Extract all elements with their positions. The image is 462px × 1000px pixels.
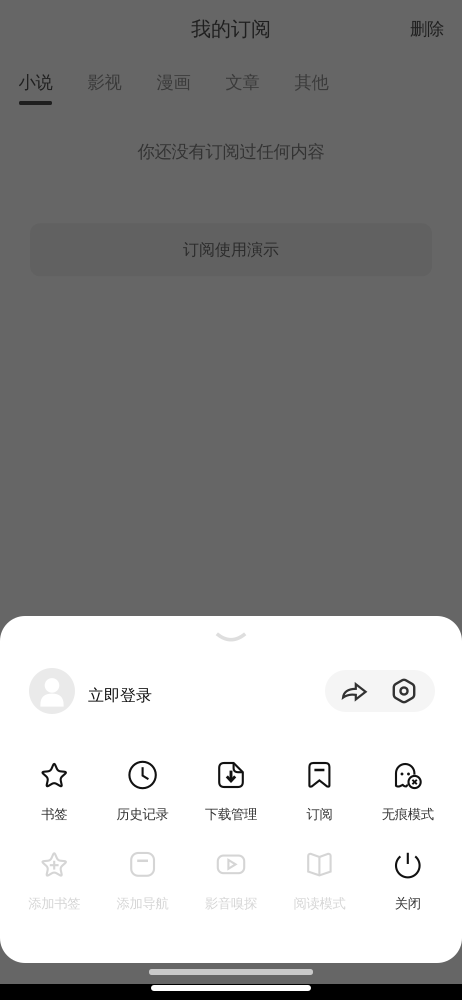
button[interactable]: 影音嗅探	[187, 848, 275, 912]
button[interactable]: 订阅使用演示	[30, 223, 432, 276]
button[interactable]: 历史记录	[98, 759, 187, 822]
staticText: 你还没有订阅过任何内容	[137, 141, 324, 162]
staticText: 删除	[410, 18, 444, 40]
button[interactable]: 添加书签	[10, 848, 98, 912]
button[interactable]: 漫画	[139, 58, 208, 112]
staticText: 文章	[225, 72, 259, 93]
staticText: 影音嗅探	[205, 895, 257, 912]
button[interactable]: 删除	[392, 6, 462, 52]
button[interactable]: 无痕模式	[364, 759, 452, 822]
staticText: 订阅使用演示	[183, 240, 279, 260]
staticText: 书签	[41, 806, 67, 822]
staticText: 无痕模式	[382, 806, 434, 822]
staticText: 我的订阅	[191, 17, 271, 41]
button[interactable]: 设置	[383, 670, 435, 712]
button[interactable]: 关闭	[364, 848, 452, 912]
button[interactable]: 订阅	[275, 759, 364, 822]
staticText: 小说	[18, 72, 52, 93]
staticText: 立即登录	[88, 686, 152, 705]
button[interactable]: 阅读模式	[275, 848, 364, 912]
staticText: 历史记录	[117, 806, 169, 822]
button[interactable]: 书签	[10, 759, 98, 822]
staticText: 下载管理	[205, 806, 257, 822]
staticText: 漫画	[156, 72, 190, 93]
staticText: 其他	[294, 72, 328, 93]
button[interactable]: 添加导航	[98, 848, 187, 912]
button[interactable]: 其他	[277, 58, 346, 112]
staticText: 订阅	[306, 806, 332, 822]
staticText: 关闭	[395, 895, 421, 912]
button[interactable]: 影视	[70, 58, 139, 112]
button[interactable]: 立即登录	[29, 668, 152, 714]
staticText: 添加书签	[28, 895, 80, 912]
staticText: 影视	[87, 72, 121, 93]
button[interactable]: 下载管理	[187, 759, 275, 822]
button[interactable]: 分享	[325, 670, 383, 712]
staticText: 添加导航	[117, 895, 169, 912]
button[interactable]: 文章	[208, 58, 277, 112]
button[interactable]: 小说	[1, 58, 70, 112]
staticText: 阅读模式	[293, 895, 345, 912]
